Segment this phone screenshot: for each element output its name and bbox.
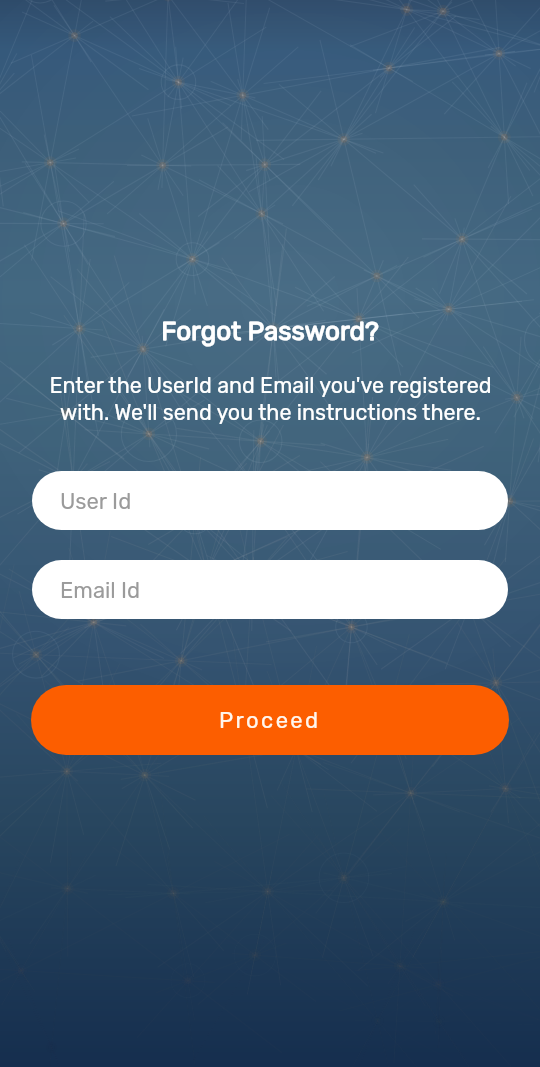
button[interactable]: Proceed xyxy=(31,685,509,755)
staticText: User Id xyxy=(60,488,132,514)
staticText: Enter the UserId and Email you've regist… xyxy=(49,373,492,425)
staticText: Forgot Password? xyxy=(161,316,379,347)
staticText: Email Id xyxy=(60,577,141,603)
button[interactable]: Email Id xyxy=(32,560,508,619)
button[interactable]: User Id xyxy=(32,471,508,530)
staticText: Proceed xyxy=(219,707,321,733)
